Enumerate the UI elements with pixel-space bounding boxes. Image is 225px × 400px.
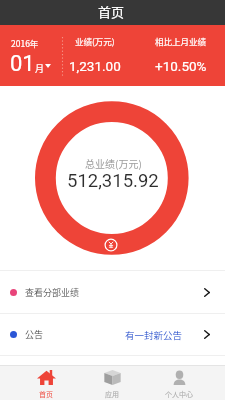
staticText: 01 xyxy=(10,51,35,77)
button[interactable]: Show amount details xyxy=(104,238,118,252)
staticText: 2016年 xyxy=(11,37,39,49)
staticText: 查看分部业绩 xyxy=(25,286,80,299)
staticText: 总业绩(万元) xyxy=(85,156,142,170)
button[interactable]: 个人中心 xyxy=(157,366,201,400)
staticText: 个人中心 xyxy=(165,389,193,399)
staticText: 1,231.00 xyxy=(69,58,121,74)
button[interactable]: 首页 xyxy=(24,366,68,400)
staticText: 月 xyxy=(35,62,45,75)
staticText: 512,315.92 xyxy=(67,170,159,192)
staticText: 业绩(万元) xyxy=(75,35,115,47)
staticText: 有一封新公告 xyxy=(125,328,183,342)
button[interactable]: 查看分部业绩 xyxy=(0,271,225,313)
button[interactable]: 公告 xyxy=(0,314,225,355)
staticText: 相比上月业绩 xyxy=(155,35,207,47)
button[interactable]: 应用 xyxy=(90,366,134,400)
staticText: +10.50% xyxy=(155,58,207,74)
staticText: 公告 xyxy=(25,328,44,341)
staticText: 应用 xyxy=(105,389,119,399)
staticText: 首页 xyxy=(39,389,53,399)
staticText: 首页 xyxy=(98,2,125,21)
